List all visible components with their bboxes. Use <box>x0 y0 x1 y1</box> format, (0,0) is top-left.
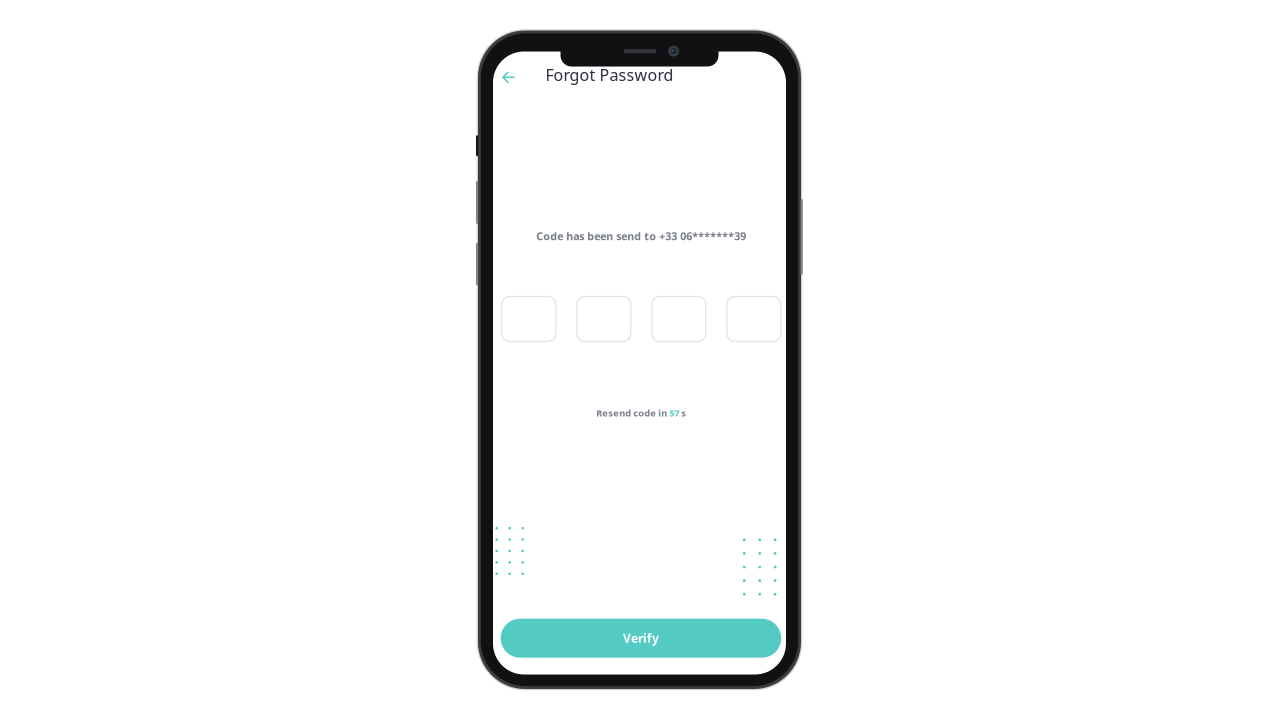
button[interactable]: Code digit field <box>502 296 556 341</box>
button[interactable]: Verify <box>501 619 781 658</box>
button[interactable]: Back <box>493 62 523 92</box>
staticText: Code has been send to +33 06*******39 <box>536 229 746 243</box>
staticText: Resend code in <box>596 407 669 419</box>
staticText: Forgot Password <box>545 64 673 85</box>
staticText: Verify <box>623 630 659 646</box>
button[interactable]: Code digit field <box>577 296 631 341</box>
staticText: 57 <box>669 407 679 419</box>
staticText: s <box>679 407 686 419</box>
button[interactable]: Code digit field <box>727 296 781 341</box>
button[interactable]: Code digit field <box>652 296 706 341</box>
